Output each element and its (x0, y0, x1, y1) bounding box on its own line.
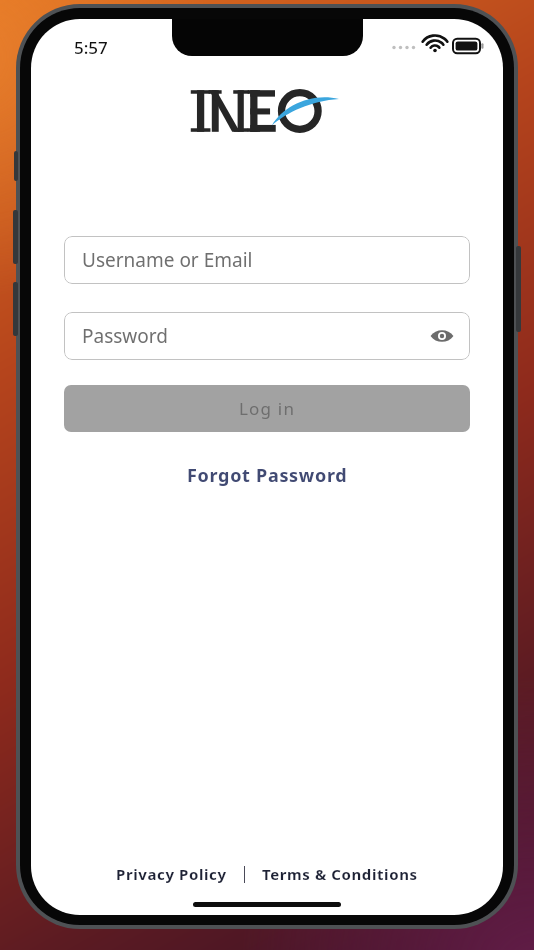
staticText: Terms & Conditions (262, 864, 418, 884)
staticText: Username or Email (82, 247, 253, 273)
button[interactable]: Terms & Conditions (258, 860, 422, 888)
button[interactable]: Password (64, 312, 470, 360)
staticText: Privacy Policy (116, 864, 227, 884)
button[interactable]: Forgot Password (179, 459, 356, 492)
staticText: Log in (239, 397, 296, 420)
button[interactable]: Privacy Policy (112, 860, 231, 888)
button[interactable]: Show password (424, 318, 460, 354)
button[interactable]: Username or Email (64, 236, 470, 284)
staticText: 5:57 (74, 36, 108, 59)
button[interactable]: Log in (64, 385, 470, 432)
staticText: Forgot Password (187, 463, 348, 488)
staticText: Password (82, 323, 168, 349)
